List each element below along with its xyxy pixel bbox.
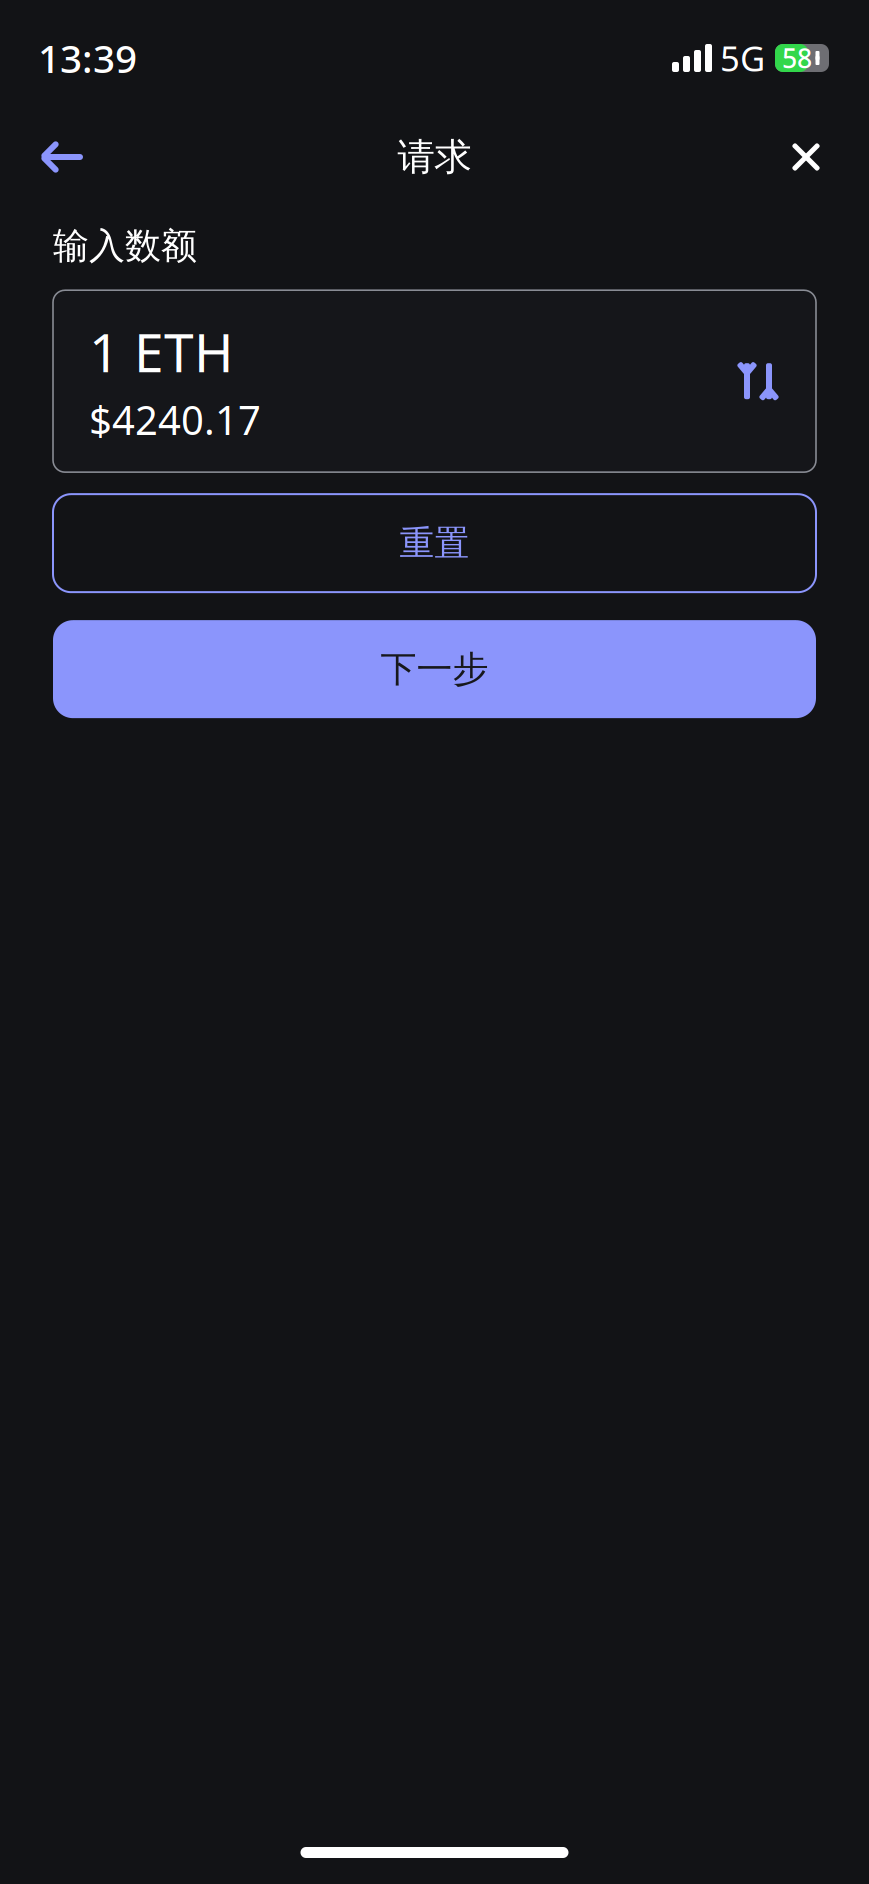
- button[interactable]: 关闭: [775, 126, 837, 188]
- button[interactable]: 重置: [53, 494, 816, 592]
- staticText: 下一步: [380, 647, 488, 691]
- button[interactable]: 下一步: [53, 620, 816, 718]
- staticText: 5G: [720, 35, 765, 81]
- staticText: 1 ETH: [89, 316, 234, 387]
- staticText: $4240.17: [89, 393, 261, 446]
- staticText: 13:39: [38, 32, 137, 84]
- staticText: 58: [782, 40, 812, 76]
- button[interactable]: 返回: [32, 126, 94, 188]
- staticText: 重置: [399, 522, 469, 564]
- staticText: 请求: [397, 134, 471, 180]
- staticText: 输入数额: [53, 224, 197, 268]
